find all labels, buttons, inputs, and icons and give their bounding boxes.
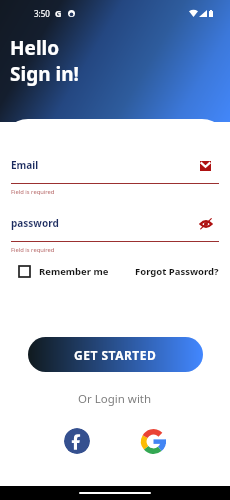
button[interactable]: GET STARTED <box>28 337 203 372</box>
button[interactable]: Email <box>199 159 212 172</box>
staticText: GET STARTED <box>74 347 157 363</box>
button[interactable]: Forgot Password? <box>135 265 219 278</box>
staticText: Sign in! <box>10 61 79 87</box>
button[interactable]: Sign in with Google <box>141 429 166 454</box>
staticText: Hello <box>10 35 60 61</box>
staticText: Field is required <box>11 246 55 254</box>
button[interactable]: Show password <box>199 217 212 230</box>
staticText: Field is required <box>11 188 55 196</box>
button[interactable]: Sign in with Facebook <box>64 428 90 454</box>
staticText: password <box>11 216 59 230</box>
button[interactable]: Remember me <box>19 265 109 278</box>
staticText: 3:50 <box>34 8 50 19</box>
staticText: Remember me <box>39 265 109 278</box>
staticText: G <box>55 7 62 19</box>
staticText: Or Login with <box>78 391 152 407</box>
staticText: Email <box>11 158 39 172</box>
staticText: Forgot Password? <box>135 265 219 278</box>
